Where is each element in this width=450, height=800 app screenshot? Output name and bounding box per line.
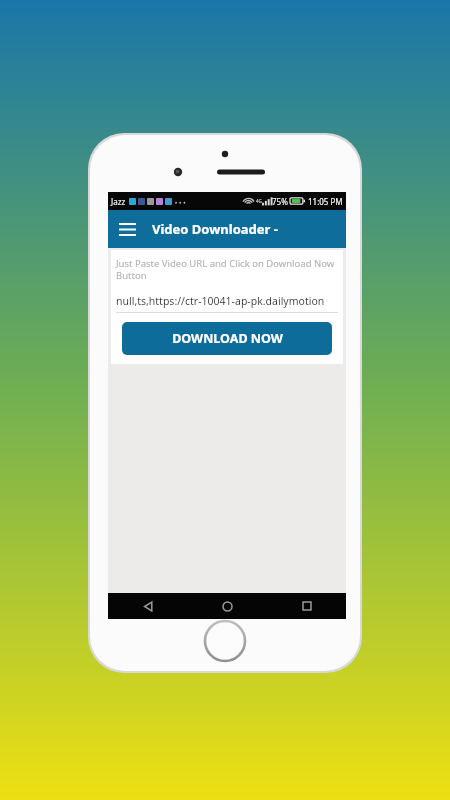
staticText: 75%: [272, 196, 288, 207]
staticText: Video Downloader - Downloa...: [152, 220, 346, 238]
button[interactable]: Recent apps: [267, 593, 346, 619]
staticText: DOWNLOAD NOW: [172, 330, 283, 347]
staticText: null,ts,https://ctr-10041-ap-pk.dailymot…: [116, 294, 325, 308]
staticText: Jazz: [111, 196, 126, 207]
button[interactable]: Back: [108, 593, 188, 619]
button[interactable]: DOWNLOAD NOW: [122, 322, 332, 355]
staticText: 11:05 PM: [308, 196, 343, 207]
staticText: Just Paste Video URL and Click on Downlo…: [116, 257, 338, 282]
staticText: 4G: [256, 198, 262, 204]
button[interactable]: Home: [188, 593, 267, 619]
button[interactable]: Open navigation drawer: [108, 210, 146, 248]
